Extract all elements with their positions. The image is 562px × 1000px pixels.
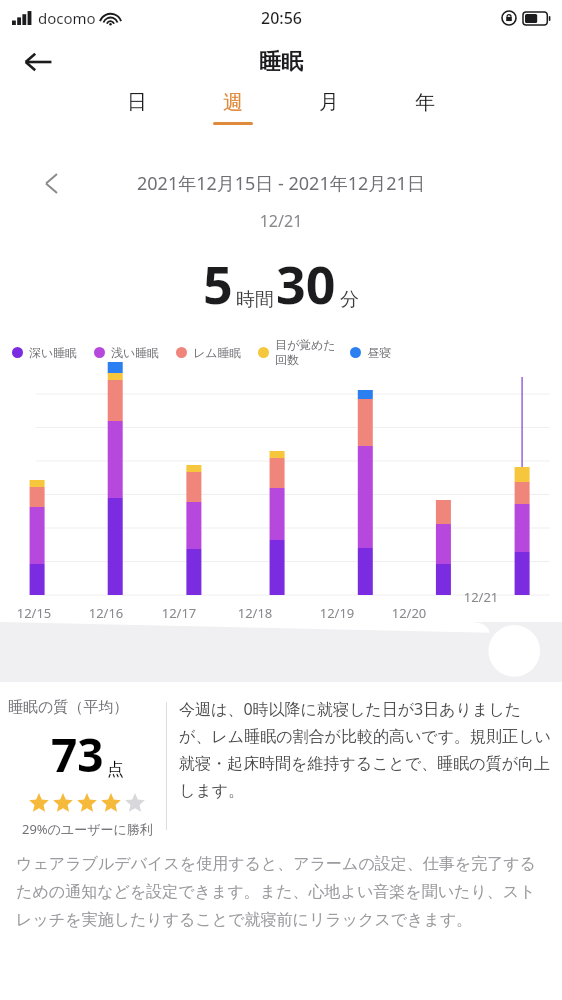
- staticText: 睡眠の質（平均）: [8, 698, 166, 717]
- staticText: 12/19: [315, 604, 359, 622]
- button[interactable]: 月: [302, 88, 356, 122]
- staticText: 時間: [236, 288, 274, 312]
- staticText: 点: [107, 759, 124, 780]
- staticText: 睡眠: [259, 48, 303, 76]
- staticText: レム睡眠: [193, 345, 242, 360]
- button[interactable]: Previous week: [32, 168, 70, 198]
- staticText: 日: [127, 90, 147, 115]
- staticText: docomo: [38, 8, 96, 28]
- button[interactable]: Back: [14, 38, 62, 86]
- staticText: 浅い睡眠: [111, 345, 160, 360]
- staticText: 年: [415, 90, 435, 115]
- staticText: 分: [340, 288, 359, 312]
- staticText: 昼寝: [367, 345, 391, 360]
- staticText: 2021年12月15日 - 2021年12月21日: [137, 171, 425, 196]
- staticText: 12/18: [233, 604, 277, 622]
- staticText: 12/21: [0, 210, 562, 232]
- staticText: 12/21: [459, 588, 503, 606]
- button[interactable]: 日: [110, 88, 164, 122]
- staticText: 目が覚めた: [275, 337, 336, 352]
- staticText: 回数: [275, 352, 299, 367]
- staticText: 30: [276, 248, 336, 319]
- staticText: 12/20: [387, 604, 431, 622]
- staticText: 12/16: [84, 604, 128, 622]
- staticText: 73: [51, 723, 104, 786]
- staticText: ウェアラブルデバイスを使用すると、アラームの設定、仕事を完了するための通知などを…: [16, 854, 546, 930]
- staticText: 5: [203, 248, 233, 319]
- staticText: 12/17: [157, 604, 201, 622]
- staticText: 29%のユーザーに勝利: [22, 820, 153, 838]
- staticText: 週: [223, 90, 243, 115]
- staticText: 12/15: [12, 604, 56, 622]
- staticText: 今週は、0時以降に就寝した日が3日ありましたが、レム睡眠の割合が比較的高いです。…: [179, 698, 552, 801]
- staticText: 20:56: [261, 7, 302, 29]
- staticText: 月: [319, 90, 339, 115]
- button[interactable]: 年: [398, 88, 452, 122]
- button[interactable]: 週: [206, 88, 260, 125]
- staticText: 深い睡眠: [29, 345, 78, 360]
